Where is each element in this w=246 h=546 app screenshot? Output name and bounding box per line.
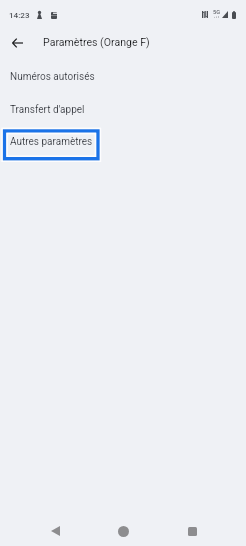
button[interactable]: Transfert d'appel: [0, 94, 246, 126]
button[interactable]: Home: [103, 511, 143, 546]
staticText: Numéros autorisés: [10, 71, 95, 83]
button[interactable]: Numéros autorisés: [0, 61, 246, 93]
staticText: 14:23: [9, 10, 30, 19]
button[interactable]: Back: [35, 511, 75, 546]
staticText: 5G: [213, 9, 221, 16]
button[interactable]: Autres paramètres: [0, 126, 246, 158]
staticText: Paramètres (Orange F): [43, 36, 150, 48]
button[interactable]: Back: [3, 29, 31, 57]
staticText: Autres paramètres: [10, 136, 93, 148]
button[interactable]: Recent apps: [172, 511, 212, 546]
staticText: Transfert d'appel: [10, 104, 85, 116]
